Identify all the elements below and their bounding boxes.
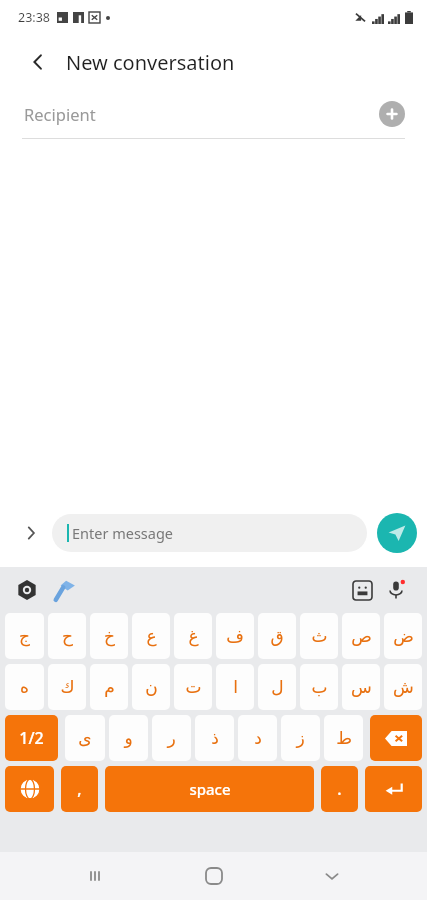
staticText: ب [311,677,328,697]
button[interactable]: Back [22,46,54,78]
staticText: ه [20,677,29,697]
button[interactable]: ع [132,613,170,659]
staticText: ج [19,626,30,646]
staticText: ن [145,677,158,697]
staticText: م [104,677,115,697]
staticText: 23:38 [18,9,50,26]
button[interactable]: ت [174,664,212,710]
button[interactable]: ف [216,613,254,659]
button[interactable]: و [109,715,148,761]
staticText: ل [271,677,284,697]
button[interactable]: Switch layout [5,715,58,761]
staticText: ط [336,728,352,748]
staticText: ى [78,728,92,748]
button[interactable]: . [321,766,358,812]
staticText: Enter message [72,523,174,543]
button[interactable]: , [61,766,98,812]
staticText: ك [60,677,75,697]
button[interactable]: ص [342,613,380,659]
button[interactable]: Add recipient [379,101,405,127]
button[interactable]: Theme [48,573,82,607]
staticText: خ [104,626,115,646]
button[interactable]: ه [5,664,44,710]
button[interactable]: Voice input [379,573,413,607]
staticText: ر [167,728,176,748]
button[interactable]: ث [300,613,338,659]
button[interactable]: Expand [16,518,46,548]
button[interactable]: د [238,715,277,761]
button[interactable]: Backspace [370,715,422,761]
staticText: و [124,728,133,748]
staticText: ش [393,677,414,697]
button[interactable]: Hide keyboard [308,852,356,900]
button[interactable]: ج [5,613,44,659]
staticText: ث [311,626,328,646]
staticText: New conversation [66,49,235,76]
staticText: ت [185,677,202,697]
staticText: س [351,677,372,697]
staticText: , [77,778,82,800]
button[interactable]: ل [258,664,296,710]
staticText: ض [393,626,414,646]
button[interactable]: م [90,664,128,710]
button[interactable]: Home [190,852,238,900]
button[interactable]: ذ [195,715,234,761]
staticText: ا [233,677,238,697]
staticText: ع [146,626,157,646]
button[interactable]: س [342,664,380,710]
staticText: Recipient [24,103,96,125]
staticText: ز [296,728,305,748]
button[interactable]: ق [258,613,296,659]
staticText: ص [351,626,372,646]
staticText: ح [62,626,73,646]
button[interactable]: Enter message [52,514,367,552]
button[interactable]: ض [384,613,422,659]
button[interactable]: ا [216,664,254,710]
button[interactable]: خ [90,613,128,659]
button[interactable]: ك [48,664,86,710]
staticText: space [189,779,231,799]
button[interactable]: ب [300,664,338,710]
button[interactable]: Emoji [345,573,379,607]
staticText: . [337,778,342,800]
button[interactable]: غ [174,613,212,659]
staticText: ق [270,626,284,646]
button[interactable]: ر [152,715,191,761]
button[interactable]: ط [324,715,363,761]
button[interactable]: Send [377,513,417,553]
button[interactable]: ى [65,715,105,761]
button[interactable]: ن [132,664,170,710]
button[interactable]: Enter [365,766,422,812]
button[interactable]: space [105,766,314,812]
button[interactable]: Keyboard settings [10,573,44,607]
staticText: ذ [211,728,219,748]
button[interactable]: ز [281,715,320,761]
button[interactable]: Recents [71,852,119,900]
button[interactable]: ش [384,664,422,710]
staticText: ف [226,626,244,646]
staticText: غ [188,626,199,646]
staticText: 1/2 [19,727,44,749]
button[interactable]: Recipient [0,90,427,138]
button[interactable]: ح [48,613,86,659]
button[interactable]: Change language [5,766,54,812]
staticText: د [254,728,262,748]
